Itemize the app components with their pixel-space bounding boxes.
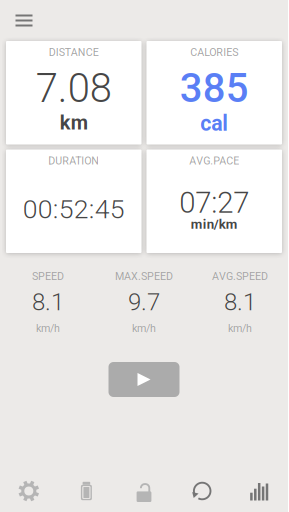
button[interactable]: Menu bbox=[7, 3, 41, 37]
staticText: cal bbox=[200, 111, 228, 136]
staticText: km/h bbox=[228, 322, 252, 334]
staticText: AVG.SPEED bbox=[212, 270, 268, 282]
staticText: CALORIES bbox=[190, 46, 238, 58]
staticText: 00:52:45 bbox=[23, 193, 125, 225]
button[interactable]: Reset bbox=[173, 470, 230, 512]
button[interactable]: Start bbox=[108, 362, 179, 397]
staticText: 07:27 bbox=[179, 185, 249, 220]
staticText: SPEED bbox=[32, 270, 64, 282]
staticText: DISTANCE bbox=[49, 46, 99, 58]
button[interactable]: Statistics bbox=[230, 470, 288, 512]
staticText: DURATION bbox=[48, 154, 99, 167]
staticText: km bbox=[60, 111, 88, 134]
staticText: km/h bbox=[36, 322, 60, 334]
staticText: 385 bbox=[180, 65, 249, 112]
staticText: 8.1 bbox=[224, 288, 256, 316]
button[interactable]: Lock bbox=[115, 470, 173, 512]
staticText: MAX.SPEED bbox=[115, 270, 173, 282]
staticText: AVG.PACE bbox=[189, 154, 239, 167]
button[interactable]: Settings bbox=[0, 470, 58, 512]
staticText: km/h bbox=[132, 322, 156, 334]
staticText: 7.08 bbox=[36, 65, 112, 112]
staticText: min/km bbox=[191, 216, 238, 232]
staticText: 8.1 bbox=[32, 288, 64, 316]
staticText: 9.7 bbox=[128, 288, 160, 316]
button[interactable]: Battery bbox=[58, 470, 115, 512]
